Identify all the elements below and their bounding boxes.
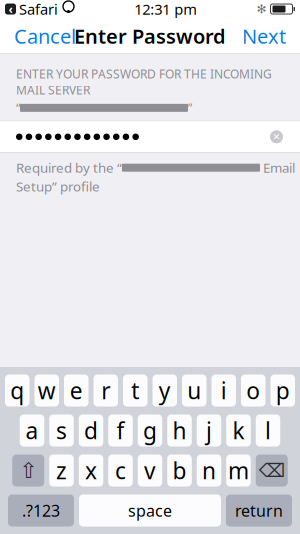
staticText: return <box>235 500 283 521</box>
staticText: Required by the “ <box>16 159 122 176</box>
staticText: d <box>84 415 98 445</box>
button[interactable]: x <box>79 454 103 486</box>
staticText: o <box>246 375 260 405</box>
staticText: s <box>56 415 67 445</box>
staticText: w <box>38 375 56 405</box>
staticText: j <box>206 415 212 445</box>
staticText: h <box>172 415 186 445</box>
button[interactable]: Password field <box>0 121 300 152</box>
button[interactable]: Back to Safari <box>0 0 62 19</box>
staticText: c <box>115 455 126 485</box>
staticText: i <box>221 375 227 405</box>
staticText: Email <box>260 159 295 176</box>
staticText: l <box>265 415 271 445</box>
button[interactable]: i <box>211 374 236 406</box>
staticText: q <box>10 375 24 405</box>
button[interactable]: d <box>79 414 103 446</box>
staticText: y <box>159 375 171 405</box>
button[interactable]: e <box>64 374 88 406</box>
staticText: k <box>232 415 244 445</box>
button[interactable]: space <box>79 494 221 526</box>
staticText: 12:31 pm <box>134 0 197 19</box>
button[interactable]: q <box>5 374 29 406</box>
button[interactable]: Delete <box>256 454 288 486</box>
staticText: ⌫ <box>259 460 285 481</box>
button[interactable]: l <box>256 414 280 446</box>
staticText: ” <box>188 100 192 116</box>
staticText: Setup” profile <box>16 177 100 195</box>
staticText: Next <box>242 23 286 49</box>
button[interactable]: return <box>226 494 292 526</box>
button[interactable]: h <box>167 414 192 446</box>
staticText: a <box>25 415 38 445</box>
button[interactable]: Cancel <box>0 15 90 57</box>
staticText: m <box>228 455 249 485</box>
button[interactable]: v <box>138 454 162 486</box>
button[interactable]: p <box>270 374 295 406</box>
button[interactable]: g <box>138 414 162 446</box>
staticText: n <box>202 455 216 485</box>
staticText: r <box>101 375 110 405</box>
staticText: ✕ <box>272 131 280 142</box>
button[interactable]: c <box>108 454 133 486</box>
staticText: ⇧ <box>19 458 37 483</box>
button[interactable]: j <box>197 414 221 446</box>
staticText: g <box>143 415 157 445</box>
staticText: x <box>85 455 97 485</box>
button[interactable]: Shift <box>12 454 44 486</box>
staticText: ✻ <box>256 2 266 16</box>
staticText: u <box>187 375 201 405</box>
staticText: Safari <box>19 0 58 19</box>
button[interactable]: k <box>226 414 251 446</box>
staticText: space <box>128 500 172 521</box>
button[interactable]: o <box>241 374 265 406</box>
staticText: e <box>70 375 83 405</box>
staticText: t <box>131 375 139 405</box>
button[interactable]: u <box>182 374 206 406</box>
button[interactable]: .?123 <box>8 494 74 526</box>
button[interactable]: n <box>197 454 221 486</box>
button[interactable]: b <box>167 454 192 486</box>
button[interactable]: r <box>93 374 118 406</box>
staticText: ENTER YOUR PASSWORD FOR THE INCOMING MAI… <box>16 66 272 98</box>
staticText: ‹ <box>8 1 12 17</box>
button[interactable]: t <box>123 374 147 406</box>
button[interactable]: f <box>108 414 133 446</box>
button[interactable]: y <box>152 374 177 406</box>
staticText: “ <box>16 100 20 116</box>
button[interactable]: s <box>49 414 74 446</box>
staticText: z <box>56 455 67 485</box>
button[interactable]: w <box>34 374 59 406</box>
staticText: b <box>172 455 186 485</box>
staticText: Enter Password <box>74 23 226 49</box>
button[interactable]: a <box>20 414 44 446</box>
button[interactable]: z <box>49 454 74 486</box>
button[interactable]: Next <box>228 15 300 57</box>
staticText: v <box>144 455 156 485</box>
staticText: f <box>116 415 124 445</box>
staticText: p <box>276 375 290 405</box>
button[interactable]: m <box>226 454 251 486</box>
staticText: Cancel <box>14 23 76 49</box>
staticText: .?123 <box>22 500 60 521</box>
